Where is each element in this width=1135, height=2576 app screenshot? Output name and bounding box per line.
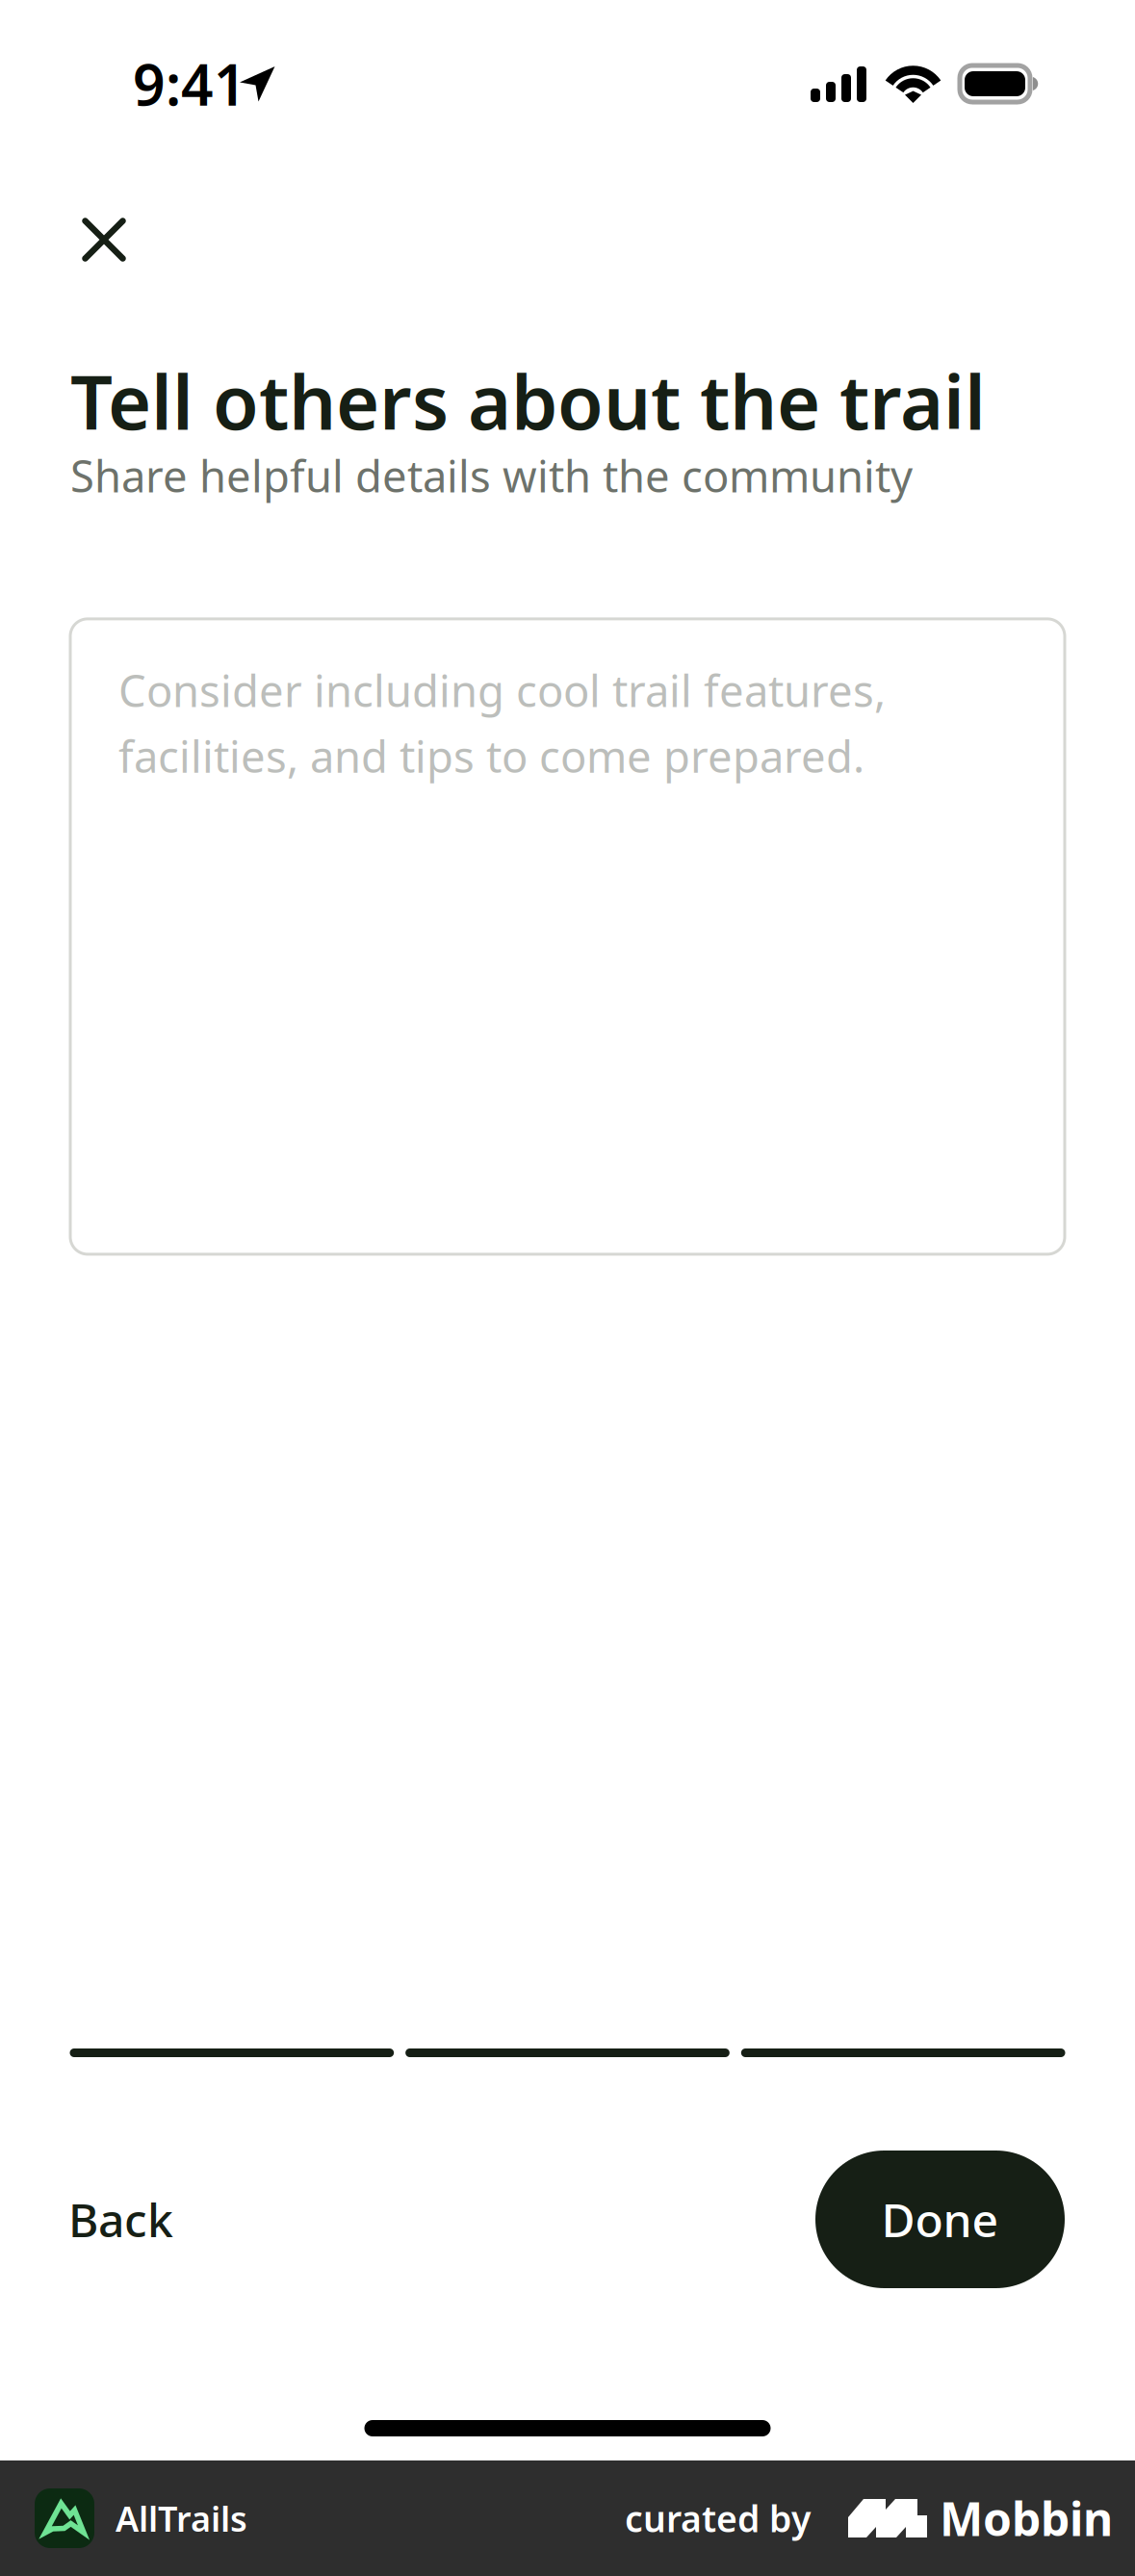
staticText: facilities, and tips to come prepared. [118, 727, 864, 785]
staticText: Back [68, 2189, 173, 2250]
button[interactable]: Done [815, 2151, 1065, 2288]
staticText: Consider including cool trail features, [118, 661, 886, 719]
button[interactable]: Close [56, 192, 152, 288]
staticText: curated by [625, 2494, 811, 2542]
staticText: 9:41 [133, 46, 246, 121]
staticText: Done [881, 2189, 999, 2250]
staticText: Share helpful details with the community [70, 446, 913, 504]
staticText: AllTrails [116, 2495, 247, 2541]
staticText: Tell others about the trail [70, 351, 986, 450]
staticText: Mobbin [940, 2488, 1113, 2549]
button[interactable]: Back [68, 2151, 173, 2288]
